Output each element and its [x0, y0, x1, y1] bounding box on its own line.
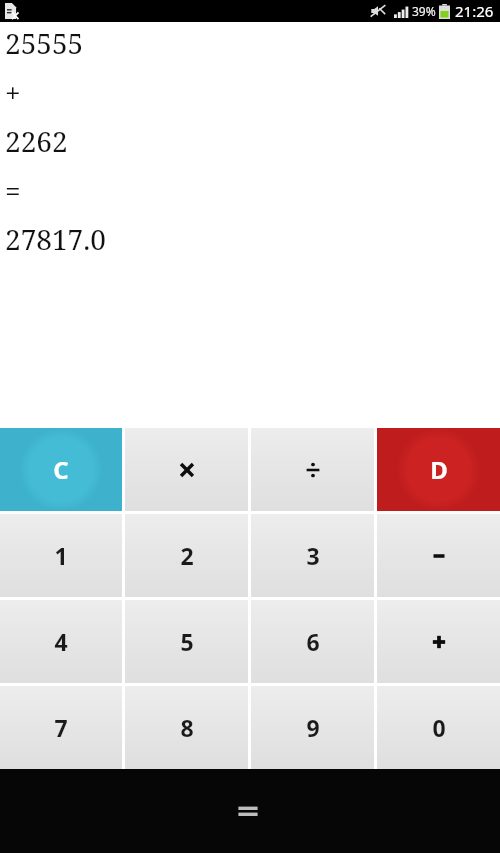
staticText: 8 — [180, 712, 194, 743]
button[interactable]: D — [377, 428, 500, 511]
button[interactable]: Plus — [377, 600, 500, 683]
staticText: 2 — [180, 540, 194, 571]
staticText: = — [5, 171, 21, 209]
button[interactable]: 8 — [125, 686, 248, 769]
button[interactable]: 5 — [125, 600, 248, 683]
staticText: 6 — [306, 626, 320, 657]
staticText: 2262 — [5, 122, 68, 160]
staticText: 7 — [54, 712, 68, 743]
staticText: 9 — [306, 712, 320, 743]
staticText: 39% — [412, 3, 436, 19]
staticText: 4 — [54, 626, 68, 657]
button[interactable]: 7 — [0, 686, 122, 769]
button[interactable]: 0 — [377, 686, 500, 769]
button[interactable]: 2 — [125, 514, 248, 597]
button[interactable]: 4 — [0, 600, 122, 683]
staticText: D — [430, 453, 448, 486]
button[interactable]: Equals — [0, 769, 500, 853]
staticText: 27817.0 — [5, 220, 106, 258]
staticText: 21:26 — [455, 1, 494, 21]
button[interactable]: Divide — [251, 428, 374, 511]
staticText: + — [5, 73, 21, 111]
staticText: 25555 — [5, 24, 84, 62]
staticText: 3 — [306, 540, 320, 571]
staticText: 5 — [180, 626, 194, 657]
staticText: C — [53, 453, 69, 486]
staticText: 0 — [432, 712, 446, 743]
button[interactable]: 9 — [251, 686, 374, 769]
button[interactable]: C — [0, 428, 122, 511]
staticText: 1 — [54, 540, 68, 571]
button[interactable]: Minus — [377, 514, 500, 597]
button[interactable]: Multiply — [125, 428, 248, 511]
button[interactable]: 1 — [0, 514, 122, 597]
button[interactable]: 6 — [251, 600, 374, 683]
button[interactable]: 3 — [251, 514, 374, 597]
